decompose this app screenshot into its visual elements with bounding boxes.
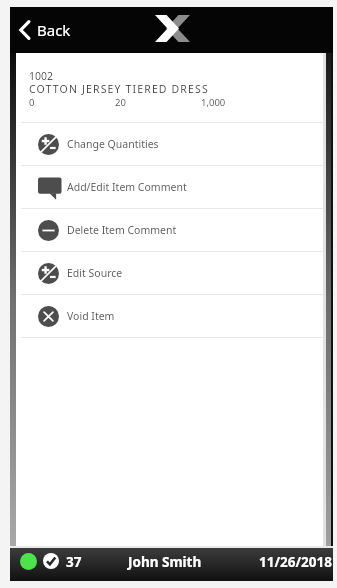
staticText: Edit Source: [67, 266, 123, 280]
staticText: Add/Edit Item Comment: [67, 180, 187, 194]
staticText: John Smith: [128, 553, 202, 571]
staticText: 20: [115, 96, 126, 109]
button[interactable]: Edit Source: [16, 252, 323, 294]
button[interactable]: Add/Edit Item Comment: [16, 166, 323, 208]
staticText: 1002: [29, 69, 54, 83]
button[interactable]: Delete Item Comment: [16, 209, 323, 251]
other: Completed items: [43, 553, 59, 569]
staticText: 1,000: [201, 96, 226, 109]
staticText: 37: [66, 553, 82, 571]
staticText: Change Quantities: [67, 137, 159, 151]
staticText: Delete Item Comment: [67, 223, 177, 237]
staticText: COTTON JERSEY TIERED DRESS: [29, 82, 209, 96]
staticText: 11/26/2018: [259, 553, 332, 571]
button[interactable]: Back: [18, 19, 71, 41]
button[interactable]: Change Quantities: [16, 123, 323, 165]
staticText: Back: [37, 20, 71, 40]
staticText: 0: [29, 96, 35, 109]
other: Online status: [20, 553, 37, 570]
staticText: Void Item: [67, 309, 115, 323]
button[interactable]: Void Item: [16, 295, 323, 337]
